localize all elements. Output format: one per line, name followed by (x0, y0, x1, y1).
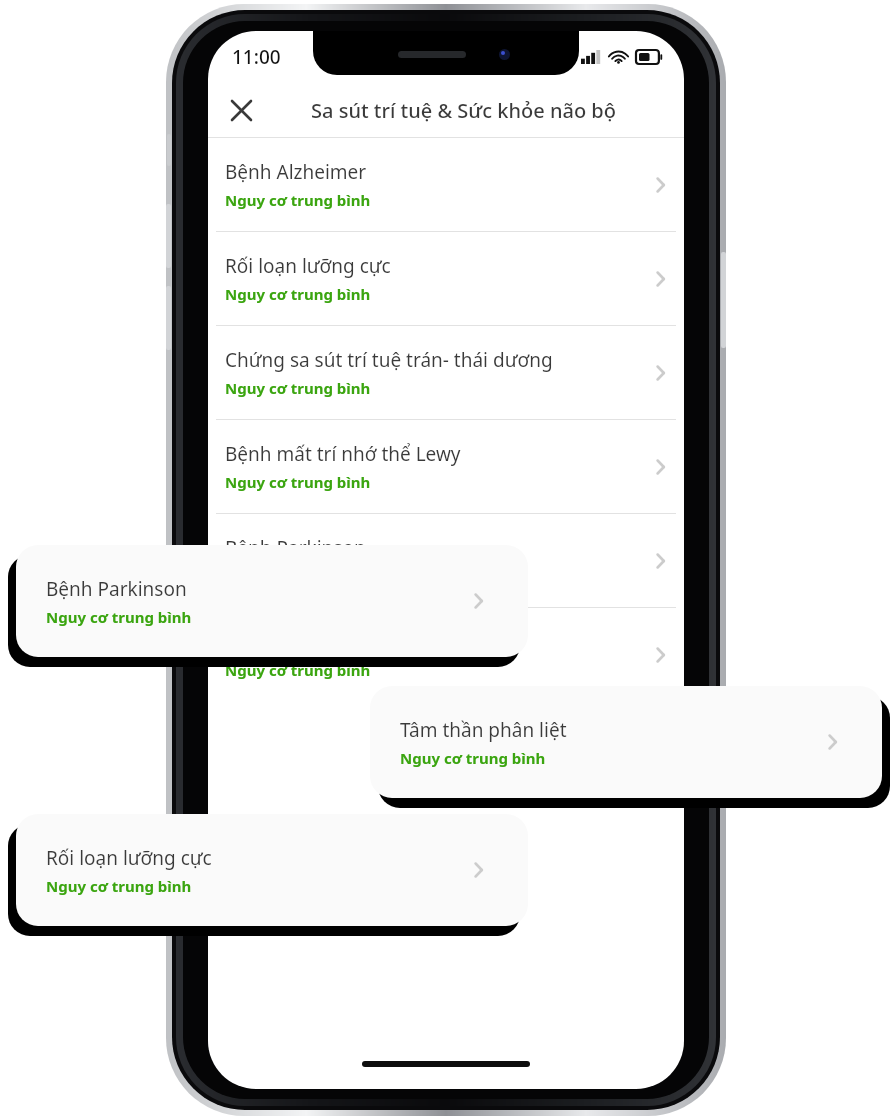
button[interactable]: Bệnh Parkinson (216, 514, 676, 607)
staticText: Nguy cơ trung bình (46, 876, 192, 896)
other: Open Bệnh mất trí nhớ thể Lewy (648, 455, 672, 479)
other: Open Chứng sa sút trí tuệ trán- thái dươ… (648, 361, 672, 385)
other: Open Bệnh Parkinson (466, 589, 490, 613)
staticText: Bệnh Parkinson (225, 535, 366, 561)
other: Open Rối loạn lưỡng cực (466, 858, 490, 882)
staticText: Nguy cơ trung bình (225, 378, 371, 398)
staticText: Rối loạn lưỡng cực (46, 845, 212, 871)
staticText: Nguy cơ trung bình (225, 660, 371, 680)
other: Open Bệnh Alzheimer (648, 173, 672, 197)
button[interactable]: Bệnh Parkinson (16, 545, 528, 657)
staticText: Nguy cơ trung bình (225, 190, 371, 210)
staticText: Sa sút trí tuệ & Sức khỏe não bộ (311, 97, 616, 124)
staticText: Nguy cơ trung bình (225, 284, 371, 304)
staticText: Nguy cơ trung bình (46, 607, 192, 627)
staticText: Bệnh mất trí nhớ thể Lewy (225, 441, 461, 467)
staticText: Nguy cơ trung bình (400, 748, 546, 768)
button[interactable]: Rối loạn lưỡng cực (16, 814, 528, 926)
staticText: Bệnh Alzheimer (225, 159, 367, 185)
staticText: Chứng sa sút trí tuệ trán- thái dương (225, 347, 553, 373)
staticText: Tâm thần phân liệt (400, 717, 567, 743)
other: Open Tâm thần phân liệt (648, 643, 672, 667)
other: Open Bệnh Parkinson (648, 549, 672, 573)
staticText: Nguy cơ trung bình (225, 472, 371, 492)
button[interactable]: Chứng sa sút trí tuệ trán- thái dương (216, 326, 676, 419)
button[interactable]: Close (222, 91, 260, 129)
staticText: 11:00 (232, 44, 281, 70)
button[interactable]: Tâm thần phân liệt (370, 686, 882, 798)
button[interactable]: Tâm thần phân liệt (216, 608, 676, 701)
other: Open Rối loạn lưỡng cực (648, 267, 672, 291)
button[interactable]: Bệnh mất trí nhớ thể Lewy (216, 420, 676, 513)
staticText: Rối loạn lưỡng cực (225, 253, 391, 279)
button[interactable]: Rối loạn lưỡng cực (216, 232, 676, 325)
other: Open Tâm thần phân liệt (820, 730, 844, 754)
staticText: Bệnh Parkinson (46, 576, 187, 602)
button[interactable]: Bệnh Alzheimer (216, 138, 676, 231)
